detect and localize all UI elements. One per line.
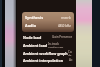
staticText: Synthesis — [25, 15, 44, 20]
button[interactable]: Node load — [23, 34, 73, 40]
staticText: Node load — [23, 35, 42, 40]
button[interactable] — [22, 12, 74, 32]
staticText: 48.0 kHz — [58, 24, 71, 28]
staticText: Ambient load — [23, 43, 48, 48]
staticText: Audio — [25, 23, 37, 28]
staticText: Cadence — [68, 50, 73, 56]
staticText: Gain Presence — [52, 35, 73, 39]
button[interactable]: Ambient load — [23, 42, 73, 48]
button[interactable]: Ambient workflow graph — [23, 50, 73, 56]
staticText: Ac — [69, 58, 73, 62]
staticText: Ambient workflow graph — [23, 51, 68, 56]
button[interactable]: Ambient interpolation — [23, 57, 73, 63]
staticText: reverb — [61, 16, 71, 20]
staticText: Ambient interpolation — [23, 58, 63, 63]
staticText: In-track continuum — [48, 42, 73, 48]
